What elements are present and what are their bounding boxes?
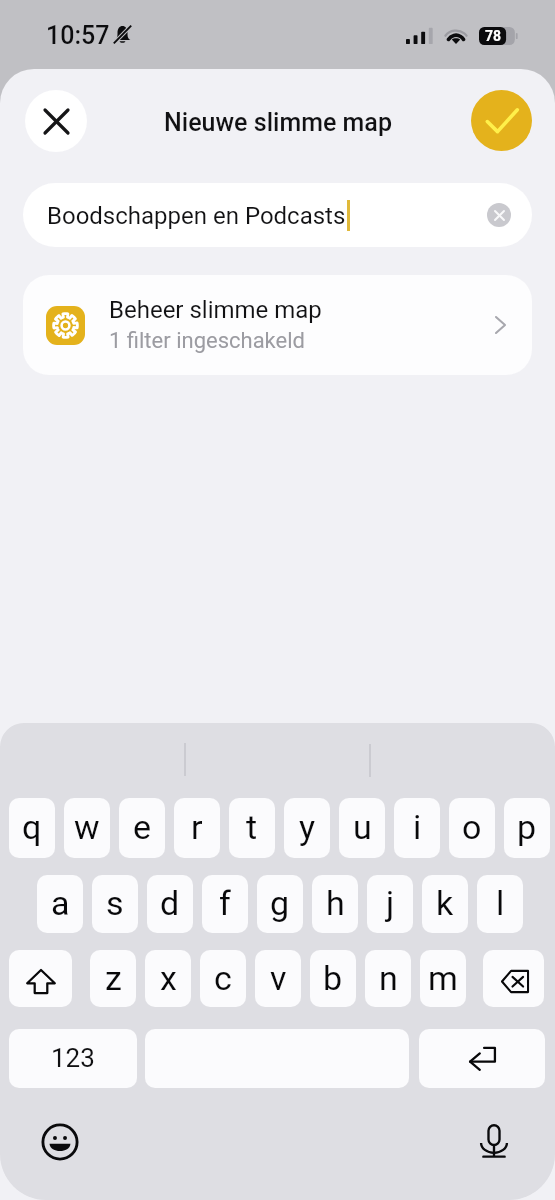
button[interactable]: m [420,950,466,1007]
button[interactable]: Sluiten [25,90,87,152]
staticText: w [74,807,100,847]
button[interactable]: Enter [419,1029,545,1088]
staticText: Boodschappen en Podcasts [47,202,346,230]
staticText: m [428,958,458,998]
button[interactable]: g [257,875,303,933]
staticText: 123 [51,1043,95,1073]
staticText: i [413,807,422,847]
staticText: z [105,958,122,998]
button[interactable]: o [449,798,495,858]
button[interactable]: v [255,950,301,1007]
staticText: u [353,807,372,847]
button[interactable]: Wissen [487,203,511,227]
staticText: x [160,958,177,998]
button[interactable]: i [394,798,440,858]
button[interactable]: 123 [9,1029,137,1088]
button[interactable]: c [200,950,246,1007]
button[interactable]: l [477,875,523,933]
button[interactable]: t [229,798,275,858]
button[interactable]: a [37,875,83,933]
staticText: o [462,807,482,847]
staticText: f [219,883,231,923]
staticText: g [270,883,290,923]
button[interactable]: Shift [9,950,72,1007]
button[interactable]: x [145,950,191,1007]
button[interactable]: k [422,875,468,933]
button[interactable]: Bevestigen [471,90,532,151]
button[interactable]: q [9,798,55,858]
staticText: b [323,958,343,998]
button[interactable]: n [365,950,411,1007]
staticText: d [160,883,180,923]
staticText: r [191,807,203,847]
button[interactable]: Emoji [38,1120,82,1164]
staticText: 78 [485,28,502,44]
staticText: n [379,958,398,998]
button[interactable]: Microfoon [472,1120,516,1164]
staticText: k [436,883,454,923]
staticText: q [22,807,42,847]
staticText: 10:57 [46,21,110,50]
button[interactable]: y [284,798,330,858]
staticText: h [326,883,345,923]
staticText: Beheer slimme map [109,296,322,324]
button[interactable]: e [119,798,165,858]
button[interactable]: z [90,950,136,1007]
button[interactable]: j [367,875,413,933]
button[interactable]: w [64,798,110,858]
staticText: y [299,807,316,847]
staticText: v [270,958,287,998]
button[interactable]: b [310,950,356,1007]
staticText: t [246,807,258,847]
staticText: a [51,883,70,923]
button[interactable]: Boodschappen en Podcasts [23,183,532,247]
button[interactable]: s [92,875,138,933]
button[interactable]: p [504,798,550,858]
staticText: 1 filter ingeschakeld [109,328,305,354]
button[interactable]: Backspace [483,950,544,1007]
button[interactable]: Beheer slimme map [23,275,532,375]
staticText: l [496,883,505,923]
staticText: Nieuwe slimme map [164,108,392,137]
staticText: c [214,958,232,998]
staticText: e [133,807,152,847]
button[interactable]: f [202,875,248,933]
button[interactable]: u [339,798,385,858]
button[interactable]: d [147,875,193,933]
button[interactable]: h [312,875,358,933]
staticText: j [386,883,395,923]
button[interactable]: r [174,798,220,858]
staticText: p [517,807,537,847]
staticText: s [106,883,124,923]
